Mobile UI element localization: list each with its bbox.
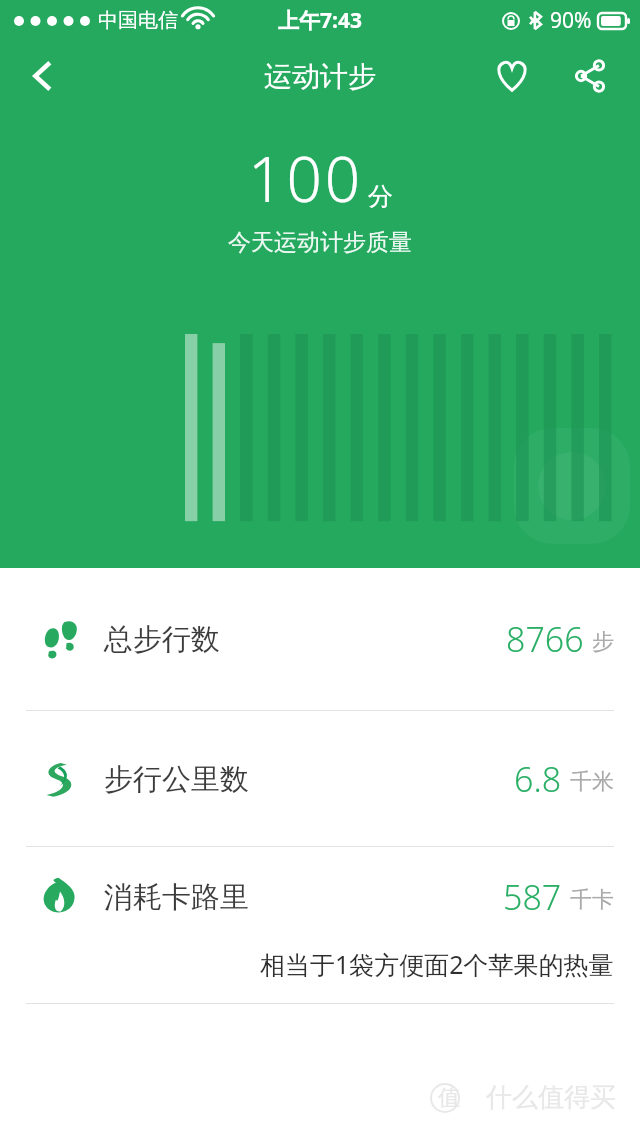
button[interactable]: Share	[562, 48, 618, 104]
button[interactable]: 步行公里数	[0, 711, 640, 846]
staticText: 值	[438, 1084, 460, 1112]
button[interactable]: Favorite	[484, 48, 540, 104]
staticText: 千卡	[570, 886, 614, 914]
button[interactable]: Back	[14, 48, 70, 104]
staticText: 步	[592, 628, 614, 656]
staticText: 587	[503, 874, 562, 920]
staticText: 中国电信	[98, 8, 178, 33]
staticText: 相当于1袋方便面2个苹果的热量	[260, 947, 614, 981]
staticText: 上午7:43	[278, 6, 362, 35]
staticText: 6.8	[514, 756, 562, 802]
staticText: 总步行数	[104, 621, 220, 658]
button[interactable]: 消耗卡路里	[0, 847, 640, 1003]
staticText: 8766	[506, 616, 584, 662]
staticText: 今天运动计步质量	[228, 228, 412, 257]
staticText: 千米	[570, 768, 614, 796]
staticText: 分	[368, 181, 393, 212]
staticText: 步行公里数	[104, 761, 249, 798]
staticText: 什么值得买	[486, 1081, 616, 1114]
staticText: 90%	[550, 6, 592, 35]
button[interactable]: 总步行数	[0, 568, 640, 710]
staticText: 运动计步	[264, 59, 376, 94]
staticText: 消耗卡路里	[104, 879, 249, 916]
staticText: 100	[248, 136, 364, 220]
